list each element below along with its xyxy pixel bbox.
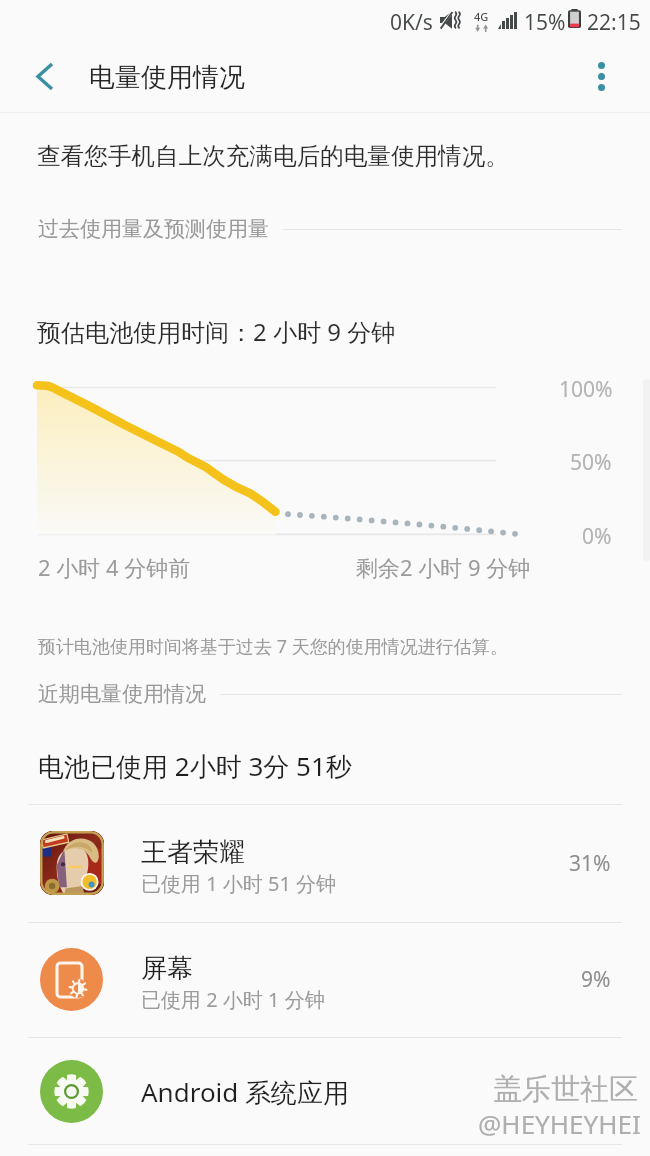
staticText: 31% bbox=[569, 849, 611, 878]
staticText: Android 系统应用 bbox=[141, 1074, 350, 1110]
staticText: 预计电池使用时间将基于过去 7 天您的使用情况进行估算。 bbox=[38, 634, 508, 659]
button[interactable]: Android 系统应用 bbox=[0, 1037, 650, 1145]
button[interactable]: More options bbox=[573, 48, 629, 104]
staticText: 电量使用情况 bbox=[89, 61, 245, 94]
button[interactable]: 屏幕 bbox=[0, 922, 650, 1037]
staticText: 电池已使用 2小时 3分 51秒 bbox=[38, 748, 352, 784]
staticText: 过去使用量及预测使用量 bbox=[38, 216, 269, 242]
staticText: 2 小时 4 分钟前 bbox=[38, 552, 191, 582]
button[interactable]: Back bbox=[16, 48, 74, 104]
staticText: 4G bbox=[474, 9, 489, 24]
staticText: 已使用 1 小时 51 分钟 bbox=[141, 870, 337, 897]
staticText: 预估电池使用时间：2 小时 9 分钟 bbox=[37, 315, 396, 348]
staticText: 0K/s bbox=[390, 8, 433, 37]
staticText: 王者荣耀 bbox=[141, 836, 245, 869]
button[interactable]: 王者荣耀 bbox=[0, 804, 650, 922]
staticText: 0% bbox=[582, 522, 612, 551]
staticText: 查看您手机自上次充满电后的电量使用情况。 bbox=[37, 141, 509, 171]
staticText: 剩余2 小时 9 分钟 bbox=[356, 552, 531, 582]
staticText: 100% bbox=[559, 375, 613, 404]
staticText: 近期电量使用情况 bbox=[38, 681, 206, 707]
staticText: 22:15 bbox=[587, 8, 641, 37]
staticText: 屏幕 bbox=[141, 952, 193, 985]
staticText: @HEYHEYHEI bbox=[478, 1106, 641, 1141]
staticText: 50% bbox=[570, 448, 612, 477]
staticText: 9% bbox=[581, 965, 611, 994]
staticText: 15% bbox=[524, 8, 566, 37]
staticText: 盖乐世社区 bbox=[493, 1071, 638, 1108]
staticText: 已使用 2 小时 1 分钟 bbox=[141, 986, 325, 1013]
